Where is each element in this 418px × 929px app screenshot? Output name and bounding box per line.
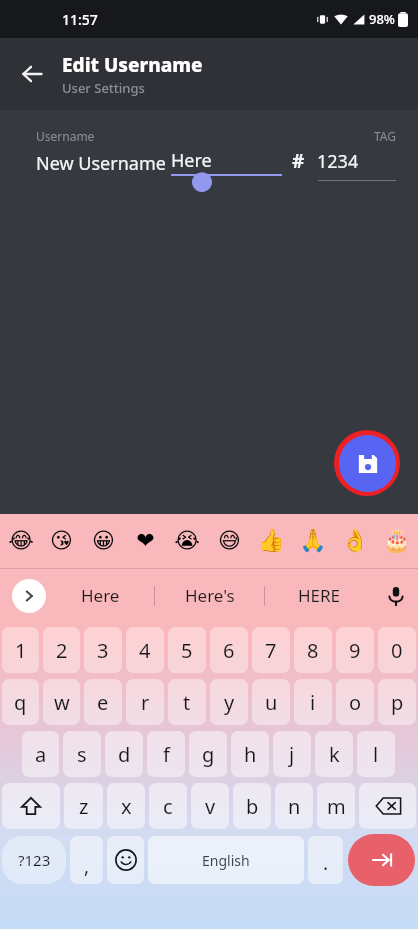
button[interactable]: f [147,731,185,777]
button[interactable]: u [252,679,290,725]
button[interactable]: Enter [348,834,415,886]
button[interactable]: p [378,679,416,725]
button[interactable]: a [22,731,59,777]
button[interactable]: ❤️ [124,514,166,568]
staticText: z [79,793,89,820]
staticText: 😭 [174,528,200,554]
button[interactable]: English [148,836,304,884]
button[interactable]: l [357,731,395,777]
button[interactable]: 😅 [208,514,250,568]
staticText: q [14,689,27,716]
staticText: w [54,689,70,716]
button[interactable]: 👌 [334,514,376,568]
button[interactable]: HERE [265,569,374,622]
button[interactable]: x [107,783,145,829]
button[interactable]: v [191,783,229,829]
button[interactable]: Save [334,430,400,496]
button[interactable]: Here's [155,569,264,622]
button[interactable]: Emoji [107,836,144,884]
button[interactable]: . [308,836,343,884]
button[interactable]: j [273,731,311,777]
staticText: , [84,853,90,879]
button[interactable]: 😂 [0,514,41,568]
button[interactable]: , [70,836,103,884]
staticText: 👍 [257,528,285,554]
staticText: o [349,689,362,716]
button[interactable]: Shift [2,783,60,829]
staticText: h [244,741,257,768]
staticText: 8 [307,637,319,664]
staticText: p [391,689,404,716]
button[interactable]: 4 [126,627,164,673]
staticText: 1234 [317,149,359,174]
staticText: HERE [298,584,341,607]
staticText: j [289,741,295,768]
button[interactable]: n [275,783,313,829]
button[interactable]: 3 [84,627,122,673]
button[interactable]: 9 [336,627,374,673]
button[interactable]: 2 [43,627,80,673]
button[interactable]: c [149,783,187,829]
button[interactable]: Back [8,50,56,98]
button[interactable]: b [233,783,271,829]
button[interactable]: e [84,679,122,725]
button[interactable]: ?123 [2,836,66,884]
staticText: 🙏 [299,528,327,554]
staticText: 5 [181,637,193,664]
staticText: ?123 [18,850,51,870]
button[interactable]: 😭 [166,514,208,568]
staticText: 98% [369,10,395,28]
button[interactable]: 6 [210,627,248,673]
button[interactable]: 🙏 [292,514,334,568]
staticText: 😅 [218,528,241,554]
button[interactable]: Here [46,569,154,622]
button[interactable]: 5 [168,627,206,673]
button[interactable]: r [126,679,164,725]
staticText: English [202,851,250,870]
button[interactable]: t [168,679,206,725]
staticText: x [121,793,132,820]
button[interactable]: d [105,731,143,777]
button[interactable]: q [2,679,39,725]
staticText: . [323,850,329,876]
staticText: 4 [139,637,151,664]
staticText: k [329,741,340,768]
staticText: l [373,741,379,768]
button[interactable]: g [189,731,227,777]
button[interactable]: 0 [378,627,416,673]
button[interactable]: h [231,731,269,777]
staticText: # [292,148,305,174]
button[interactable]: s [63,731,101,777]
staticText: 7 [265,637,277,664]
button[interactable]: 😀 [82,514,124,568]
staticText: y [224,689,235,716]
staticText: a [35,741,47,768]
button[interactable]: 👍 [250,514,292,568]
button[interactable]: 🎂 [376,514,418,568]
staticText: u [265,689,278,716]
staticText: 6 [223,637,235,664]
staticText: Here [171,148,212,173]
button[interactable]: 😘 [41,514,82,568]
staticText: s [77,741,87,768]
button[interactable]: Backspace [359,783,416,829]
staticText: 2 [56,637,68,664]
button[interactable]: y [210,679,248,725]
button[interactable]: k [315,731,353,777]
button[interactable]: w [43,679,80,725]
staticText: 9 [349,637,361,664]
staticText: t [183,689,191,716]
staticText: ❤️ [136,528,155,554]
button[interactable]: More [12,579,46,613]
button[interactable]: o [336,679,374,725]
staticText: User Settings [62,79,145,97]
button[interactable]: z [64,783,103,829]
staticText: 😘 [50,528,73,554]
button[interactable]: i [294,679,332,725]
button[interactable]: 1 [2,627,39,673]
button[interactable]: m [317,783,355,829]
button[interactable]: 8 [294,627,332,673]
button[interactable]: 7 [252,627,290,673]
staticText: TAG [374,128,396,144]
button[interactable]: Voice input [374,569,418,622]
